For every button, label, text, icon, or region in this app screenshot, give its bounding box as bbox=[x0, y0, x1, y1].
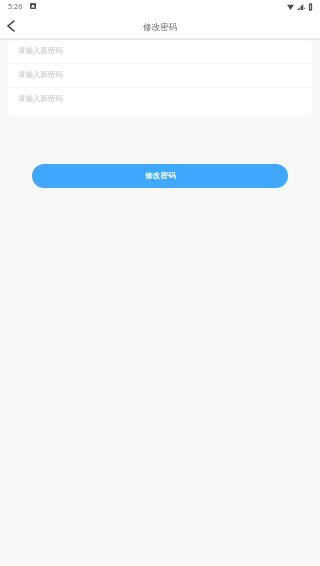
button[interactable]: 修改密码 bbox=[32, 164, 288, 188]
button[interactable]: 请输入新密码 bbox=[8, 88, 312, 112]
button[interactable]: 请输入新密码 bbox=[8, 64, 312, 88]
staticText: 请输入新密码 bbox=[18, 70, 63, 79]
staticText: 5:26 bbox=[8, 1, 23, 11]
button[interactable]: 请输入原密码 bbox=[8, 40, 312, 64]
button[interactable]: Back bbox=[0, 17, 22, 39]
staticText: 请输入新密码 bbox=[18, 94, 63, 103]
staticText: 请输入原密码 bbox=[18, 46, 63, 55]
staticText: 修改密码 bbox=[145, 171, 176, 181]
staticText: 修改密码 bbox=[143, 22, 178, 33]
